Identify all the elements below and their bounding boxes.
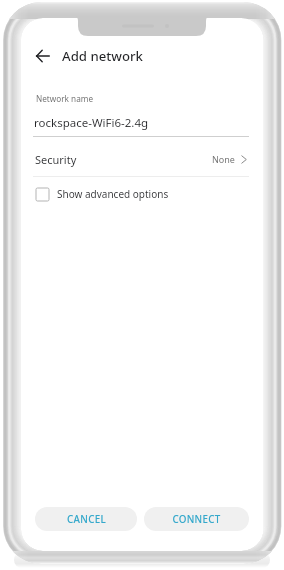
button[interactable]: Back bbox=[30, 43, 56, 69]
staticText: Security bbox=[35, 152, 77, 167]
button[interactable]: CONNECT bbox=[144, 507, 249, 531]
staticText: Show advanced options bbox=[57, 187, 169, 201]
button[interactable]: Show advanced options bbox=[32, 184, 169, 204]
staticText: rockspace-WiFi6-2.4g bbox=[34, 115, 149, 131]
staticText: None bbox=[212, 153, 235, 165]
staticText: Network name bbox=[36, 93, 93, 104]
staticText: Add network bbox=[62, 47, 143, 65]
button[interactable]: Security bbox=[33, 148, 249, 170]
button[interactable]: CANCEL bbox=[35, 507, 137, 531]
staticText: CANCEL bbox=[67, 513, 106, 526]
staticText: CONNECT bbox=[172, 513, 221, 526]
